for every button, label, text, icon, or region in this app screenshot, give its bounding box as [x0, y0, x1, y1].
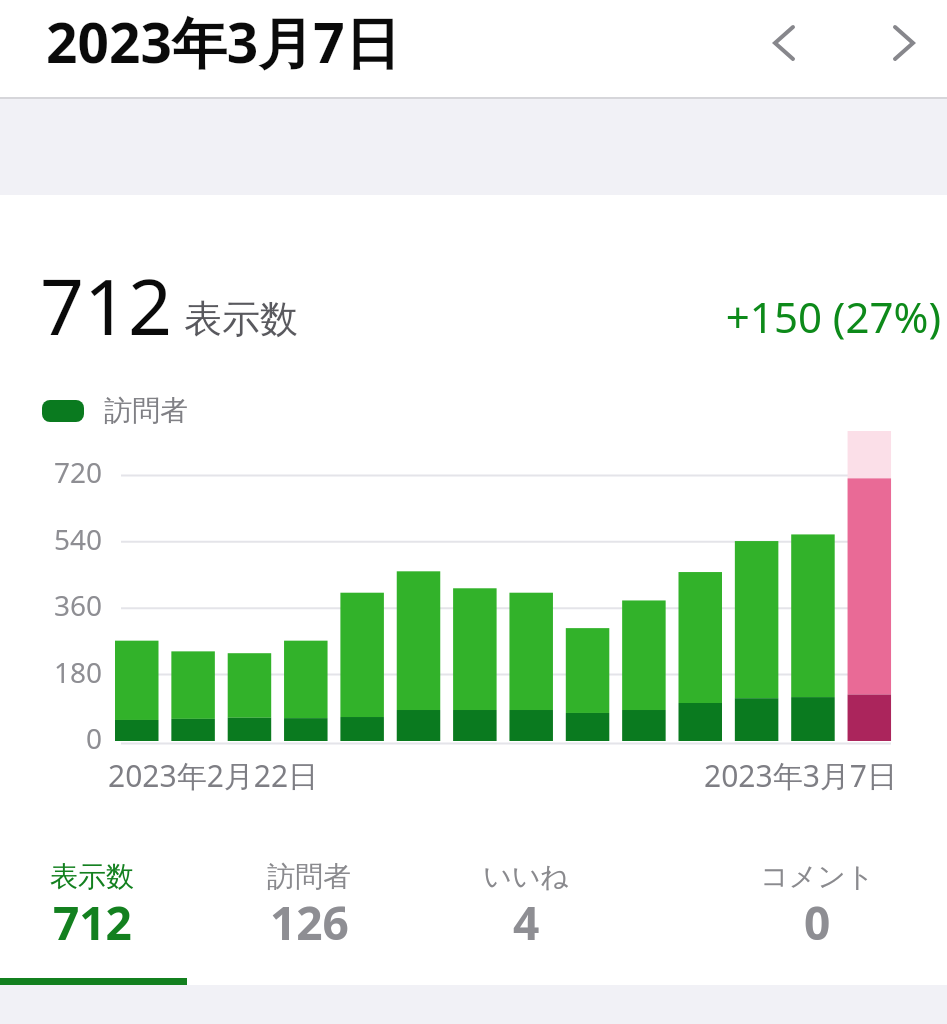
button[interactable]	[397, 431, 441, 741]
staticText: 0	[804, 891, 831, 954]
staticText: 2023年3月7日	[46, 4, 400, 79]
staticText: 訪問者	[104, 393, 188, 428]
button[interactable]: 訪問者	[204, 852, 414, 962]
staticText: 126	[270, 891, 349, 954]
staticText: 訪問者	[267, 859, 351, 894]
staticText: コメント	[760, 859, 875, 894]
staticText: 540	[53, 520, 102, 558]
button[interactable]	[453, 431, 497, 741]
staticText: 表示数	[50, 859, 134, 894]
staticText: 表示数	[184, 295, 298, 343]
button[interactable]	[509, 431, 553, 741]
button[interactable]	[228, 431, 272, 741]
staticText: 180	[53, 653, 102, 691]
staticText: 2023年3月7日	[704, 755, 897, 796]
button[interactable]	[340, 431, 384, 741]
staticText: 2023年2月22日	[108, 755, 319, 796]
button[interactable]	[756, 8, 812, 78]
staticText: 360	[53, 586, 102, 624]
button[interactable]	[284, 431, 328, 741]
button[interactable]	[876, 8, 932, 78]
staticText: いいね	[483, 859, 569, 894]
staticText: 4	[513, 891, 540, 954]
button[interactable]	[622, 431, 666, 741]
staticText: 712	[40, 253, 173, 358]
button[interactable]: 表示数	[0, 852, 197, 962]
button[interactable]	[735, 431, 779, 741]
button[interactable]: コメント	[712, 852, 922, 962]
button[interactable]	[848, 431, 892, 741]
staticText: 720	[53, 453, 102, 491]
button[interactable]	[115, 431, 159, 741]
staticText: 712	[53, 891, 132, 954]
button[interactable]	[566, 431, 610, 741]
staticText: 0	[85, 719, 102, 757]
button[interactable]	[679, 431, 723, 741]
button[interactable]	[171, 431, 215, 741]
button[interactable]	[791, 431, 835, 741]
button[interactable]: いいね	[421, 852, 631, 962]
staticText: +150 (27%)	[725, 288, 941, 345]
